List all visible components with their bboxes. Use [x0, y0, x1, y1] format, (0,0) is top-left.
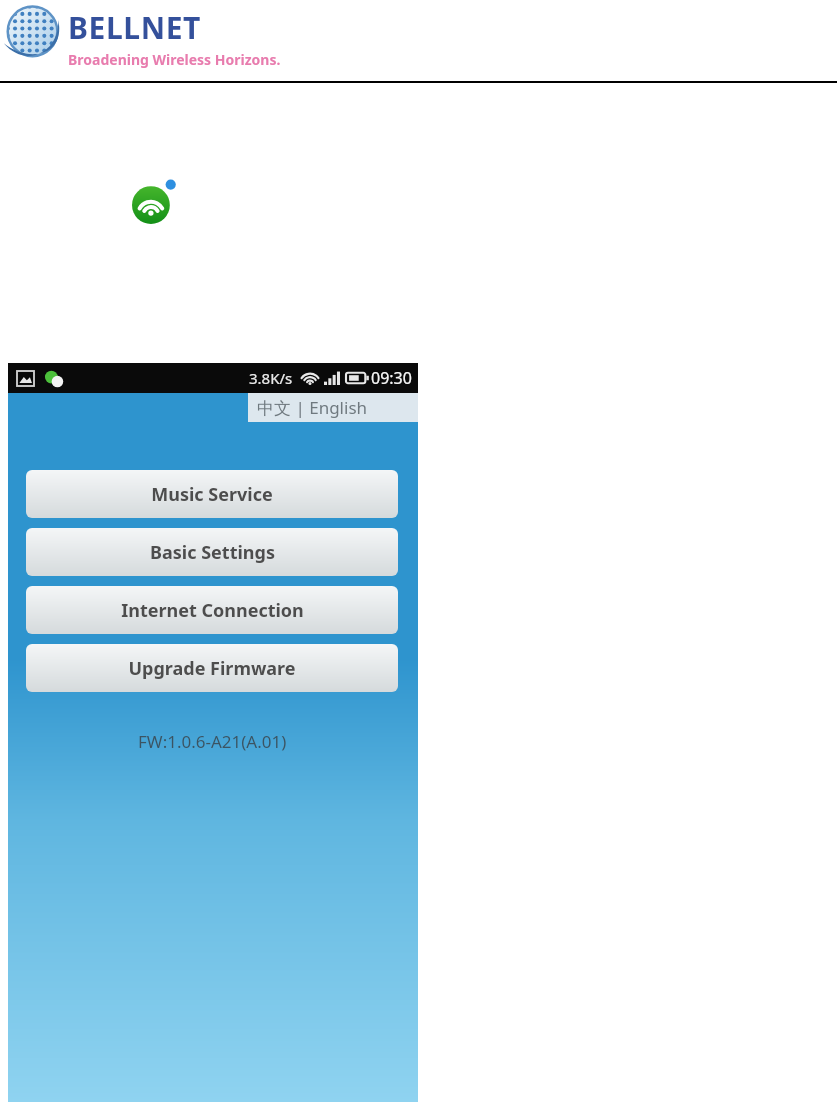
button[interactable]: Music Service	[26, 470, 398, 518]
staticText: Upgrade Firmware	[128, 656, 296, 681]
staticText: Basic Settings	[150, 540, 275, 565]
staticText: Music Service	[151, 482, 273, 507]
staticText: Broadening Wireless Horizons.	[68, 50, 281, 69]
button[interactable]: Internet Connection	[26, 586, 398, 634]
staticText: Internet Connection	[121, 598, 304, 623]
staticText: BELLNET	[68, 7, 201, 48]
button[interactable]: Basic Settings	[26, 528, 398, 576]
button[interactable]: Upgrade Firmware	[26, 644, 398, 692]
staticText: 3.8K/s	[249, 368, 293, 388]
staticText: 中文 | English	[257, 396, 368, 419]
button[interactable]: 中文 | English	[248, 393, 418, 422]
staticText: FW:1.0.6-A21(A.01)	[138, 730, 287, 753]
button[interactable]: Wi-Fi connected	[132, 180, 176, 224]
staticText: 09:30	[371, 367, 412, 389]
